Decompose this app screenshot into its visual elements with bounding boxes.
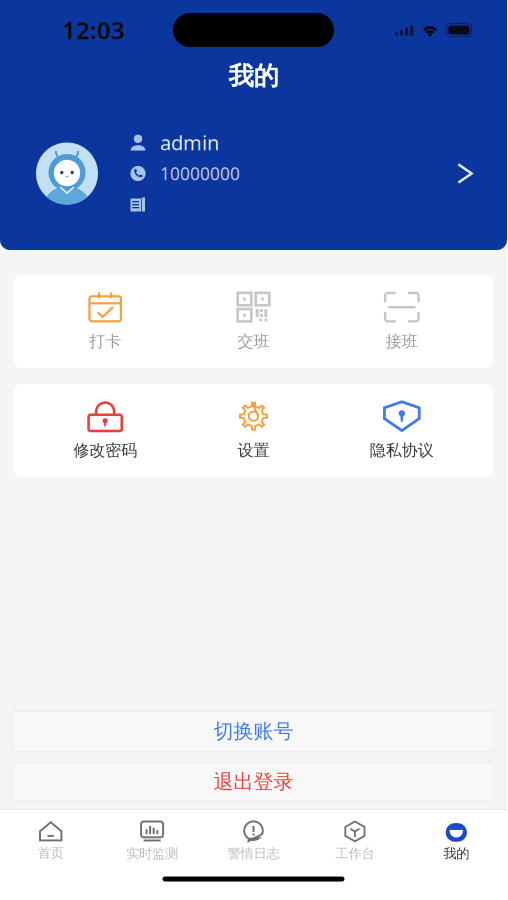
button[interactable]: admin: [0, 127, 507, 220]
staticText: 警情日志: [227, 845, 279, 862]
button[interactable]: 工作台: [304, 814, 406, 862]
staticText: 交班: [237, 332, 269, 351]
staticText: 打卡: [89, 332, 121, 351]
staticText: 接班: [386, 332, 418, 351]
button[interactable]: 我的: [406, 814, 507, 862]
staticText: 实时监测: [126, 845, 178, 862]
button[interactable]: 首页: [0, 815, 101, 861]
staticText: 切换账号: [213, 719, 293, 744]
staticText: 首页: [38, 845, 64, 861]
staticText: 我的: [228, 60, 278, 91]
staticText: 设置: [237, 441, 269, 460]
staticText: 退出登录: [213, 769, 293, 794]
button[interactable]: 接班: [328, 278, 476, 365]
button[interactable]: 打卡: [31, 278, 179, 365]
staticText: admin: [160, 129, 219, 156]
staticText: 隐私协议: [370, 441, 434, 460]
button[interactable]: 退出登录: [13, 762, 494, 801]
button[interactable]: 实时监测: [101, 814, 203, 862]
button[interactable]: 交班: [179, 278, 328, 365]
button[interactable]: 隐私协议: [328, 387, 476, 474]
button[interactable]: 切换账号: [13, 711, 494, 751]
button[interactable]: 设置: [179, 387, 328, 474]
staticText: 工作台: [335, 845, 374, 862]
staticText: 10000000: [160, 162, 240, 185]
staticText: 12:03: [62, 14, 125, 46]
button[interactable]: 警情日志: [203, 814, 304, 862]
staticText: 我的: [443, 845, 469, 862]
button[interactable]: 修改密码: [31, 387, 179, 474]
staticText: 修改密码: [73, 441, 137, 460]
